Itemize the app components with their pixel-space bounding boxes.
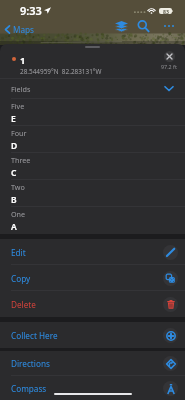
button[interactable]: Compass bbox=[0, 376, 185, 400]
button[interactable]: Close bbox=[164, 51, 175, 62]
staticText: A bbox=[11, 221, 17, 233]
staticText: Copy bbox=[11, 273, 31, 284]
staticText: Two bbox=[11, 182, 25, 192]
button[interactable]: More options bbox=[160, 17, 178, 35]
button[interactable]: Search bbox=[134, 17, 152, 35]
staticText: 97.2 ft bbox=[161, 63, 177, 70]
staticText: Directions bbox=[11, 358, 50, 369]
staticText: 1 bbox=[20, 54, 26, 67]
staticText: B bbox=[11, 194, 17, 206]
staticText: D bbox=[11, 140, 18, 152]
staticText: One bbox=[11, 209, 26, 219]
button[interactable]: Collect Here bbox=[0, 322, 185, 348]
staticText: 9:33 bbox=[20, 3, 42, 18]
staticText: C bbox=[11, 167, 17, 179]
button[interactable]: Edit bbox=[0, 239, 185, 265]
button[interactable]: Copy bbox=[0, 265, 185, 291]
button[interactable]: Maps bbox=[4, 23, 35, 36]
button[interactable]: Directions bbox=[0, 351, 185, 376]
button[interactable]: Two bbox=[0, 180, 185, 207]
staticText: Fields bbox=[11, 84, 31, 94]
staticText: Compass bbox=[11, 383, 47, 394]
staticText: Delete bbox=[11, 299, 36, 310]
staticText: E bbox=[11, 113, 16, 125]
button[interactable]: Delete bbox=[0, 291, 185, 317]
button[interactable]: One bbox=[0, 207, 185, 234]
staticText: Four bbox=[11, 128, 27, 138]
button[interactable]: Three bbox=[0, 153, 185, 180]
button[interactable]: Fields bbox=[0, 78, 185, 99]
staticText: Maps bbox=[13, 24, 34, 35]
staticText: Five bbox=[11, 101, 25, 111]
button[interactable]: Layers bbox=[112, 17, 130, 35]
staticText: Edit bbox=[11, 247, 26, 258]
staticText: 83 bbox=[163, 8, 169, 14]
staticText: Three bbox=[11, 155, 31, 165]
staticText: 28.544959°N 82.283131°W bbox=[20, 67, 102, 76]
button[interactable]: Five bbox=[0, 99, 185, 126]
staticText: Collect Here bbox=[11, 330, 58, 341]
button[interactable]: Four bbox=[0, 126, 185, 153]
